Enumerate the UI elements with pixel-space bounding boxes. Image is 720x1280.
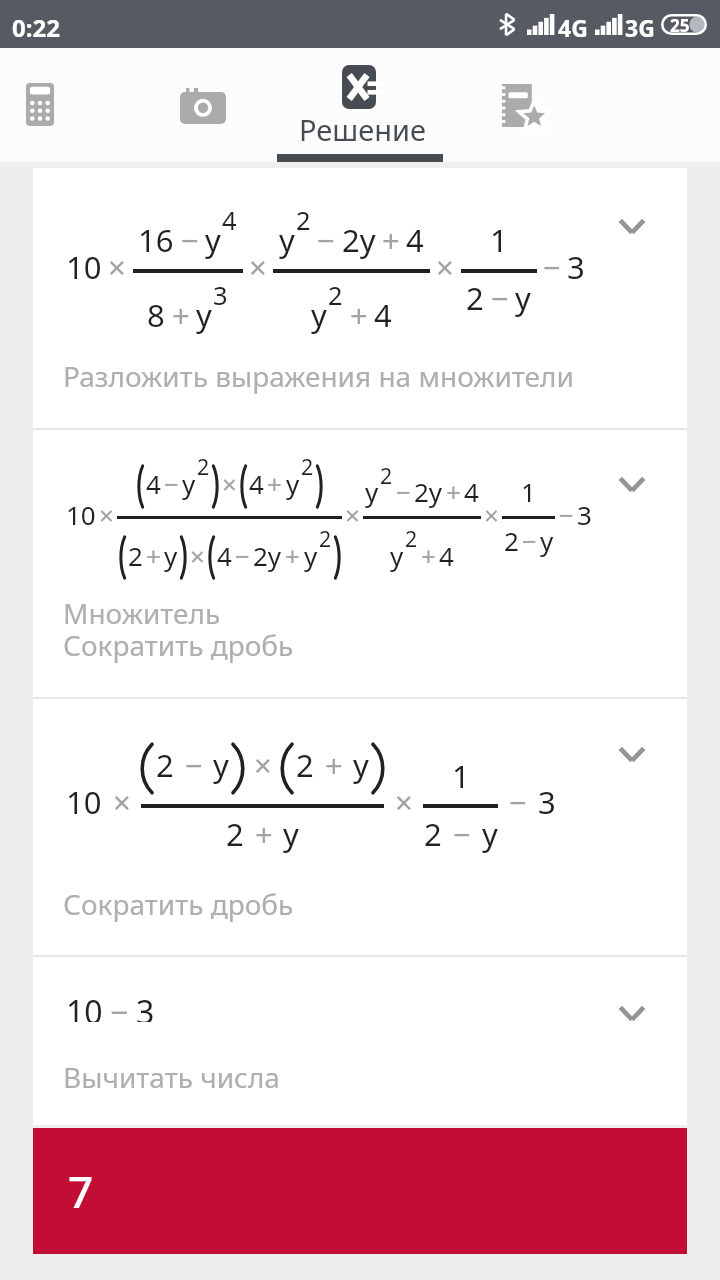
staticText: 10 [66,990,103,1022]
staticText: 10 [66,497,96,532]
staticText: 4G [558,12,588,43]
staticText: y [390,538,404,573]
staticText: − [491,277,509,319]
staticText: y [515,277,531,319]
staticText: y [353,744,369,786]
staticText: 2y [414,474,443,509]
button[interactable]: Решение [277,48,443,162]
staticText: − [317,219,335,261]
staticText: Вычитать числа [63,1058,280,1096]
button[interactable]: Expand step [603,197,661,255]
button[interactable]: Camera [180,48,340,162]
button[interactable]: Expand step [603,455,661,513]
staticText: + [325,744,343,786]
staticText: + [446,474,461,509]
staticText: Сократить дробь [63,885,294,923]
staticText: + [267,466,282,501]
staticText: y [182,466,196,501]
staticText: × [254,744,272,786]
staticText: y [213,744,229,786]
staticText: × [436,246,454,288]
staticText: 2 [328,278,343,313]
staticText: y [279,219,295,261]
staticText: y [482,813,498,855]
staticText: + [285,538,300,573]
staticText: 8 [147,294,165,336]
staticText: Множитель [63,594,221,632]
staticText: Сократить дробь [63,626,294,664]
staticText: − [185,744,203,786]
staticText: − [453,813,471,855]
staticText: y [283,813,299,855]
staticText: 2 [226,813,244,855]
staticText: × [190,538,205,573]
staticText: 4 [222,203,237,238]
staticText: + [350,294,368,336]
staticText: 10 [66,781,102,823]
staticText: 2 [156,744,174,786]
staticText: y [311,294,327,336]
staticText: 4 [146,466,161,501]
staticText: × [484,497,499,532]
staticText: × [99,497,114,532]
staticText: 10 [66,246,102,288]
staticText: 3 [213,278,228,313]
staticText: × [113,781,131,823]
button[interactable]: Expand step [603,725,661,783]
staticText: − [235,538,250,573]
staticText: y [286,466,300,501]
staticText: 2 [296,744,314,786]
staticText: 0:22 [12,11,60,44]
staticText: × [395,781,413,823]
staticText: y [365,474,379,509]
staticText: + [146,538,161,573]
staticText: − [509,781,527,823]
staticText: 2 [380,461,393,490]
staticText: − [559,497,574,532]
staticText: + [382,219,400,261]
staticText: y [164,538,178,573]
staticText: 4 [439,538,454,573]
staticText: 25 [670,14,690,35]
staticText: 2 [405,524,418,553]
button[interactable]: Calculator [0,48,180,162]
staticText: 4 [217,538,232,573]
staticText: 2y [342,219,376,261]
staticText: y [196,294,212,336]
staticText: 3 [136,990,155,1022]
staticText: 2 [296,203,311,238]
staticText: y [205,219,221,261]
button[interactable]: Expand step [603,984,661,1042]
staticText: 4 [249,466,264,501]
staticText: 3 [577,497,592,532]
staticText: 4 [406,219,424,261]
staticText: 2 [128,538,143,573]
staticText: 3 [567,246,585,288]
staticText: − [522,523,537,558]
staticText: − [181,219,199,261]
staticText: + [421,538,436,573]
staticText: Разложить выражения на множители [63,357,574,395]
staticText: − [543,246,561,288]
staticText: 3 [538,781,556,823]
staticText: − [110,990,129,1022]
staticText: × [222,466,237,501]
staticText: 3G [625,12,655,43]
staticText: 4 [374,294,392,336]
staticText: 1 [521,474,536,509]
button[interactable]: Notebook [443,48,623,162]
staticText: 2 [504,523,519,558]
staticText: y [540,523,554,558]
staticText: × [108,246,126,288]
staticText: 7 [68,1161,94,1221]
staticText: 1 [452,755,470,797]
staticText: − [396,474,411,509]
staticText: Решение [299,110,426,149]
staticText: 2y [253,538,282,573]
staticText: 1 [490,219,508,261]
staticText: 4 [464,474,479,509]
staticText: 2 [301,452,314,481]
staticText: 16 [138,219,174,261]
staticText: 2 [466,277,484,319]
staticText: y [304,538,318,573]
